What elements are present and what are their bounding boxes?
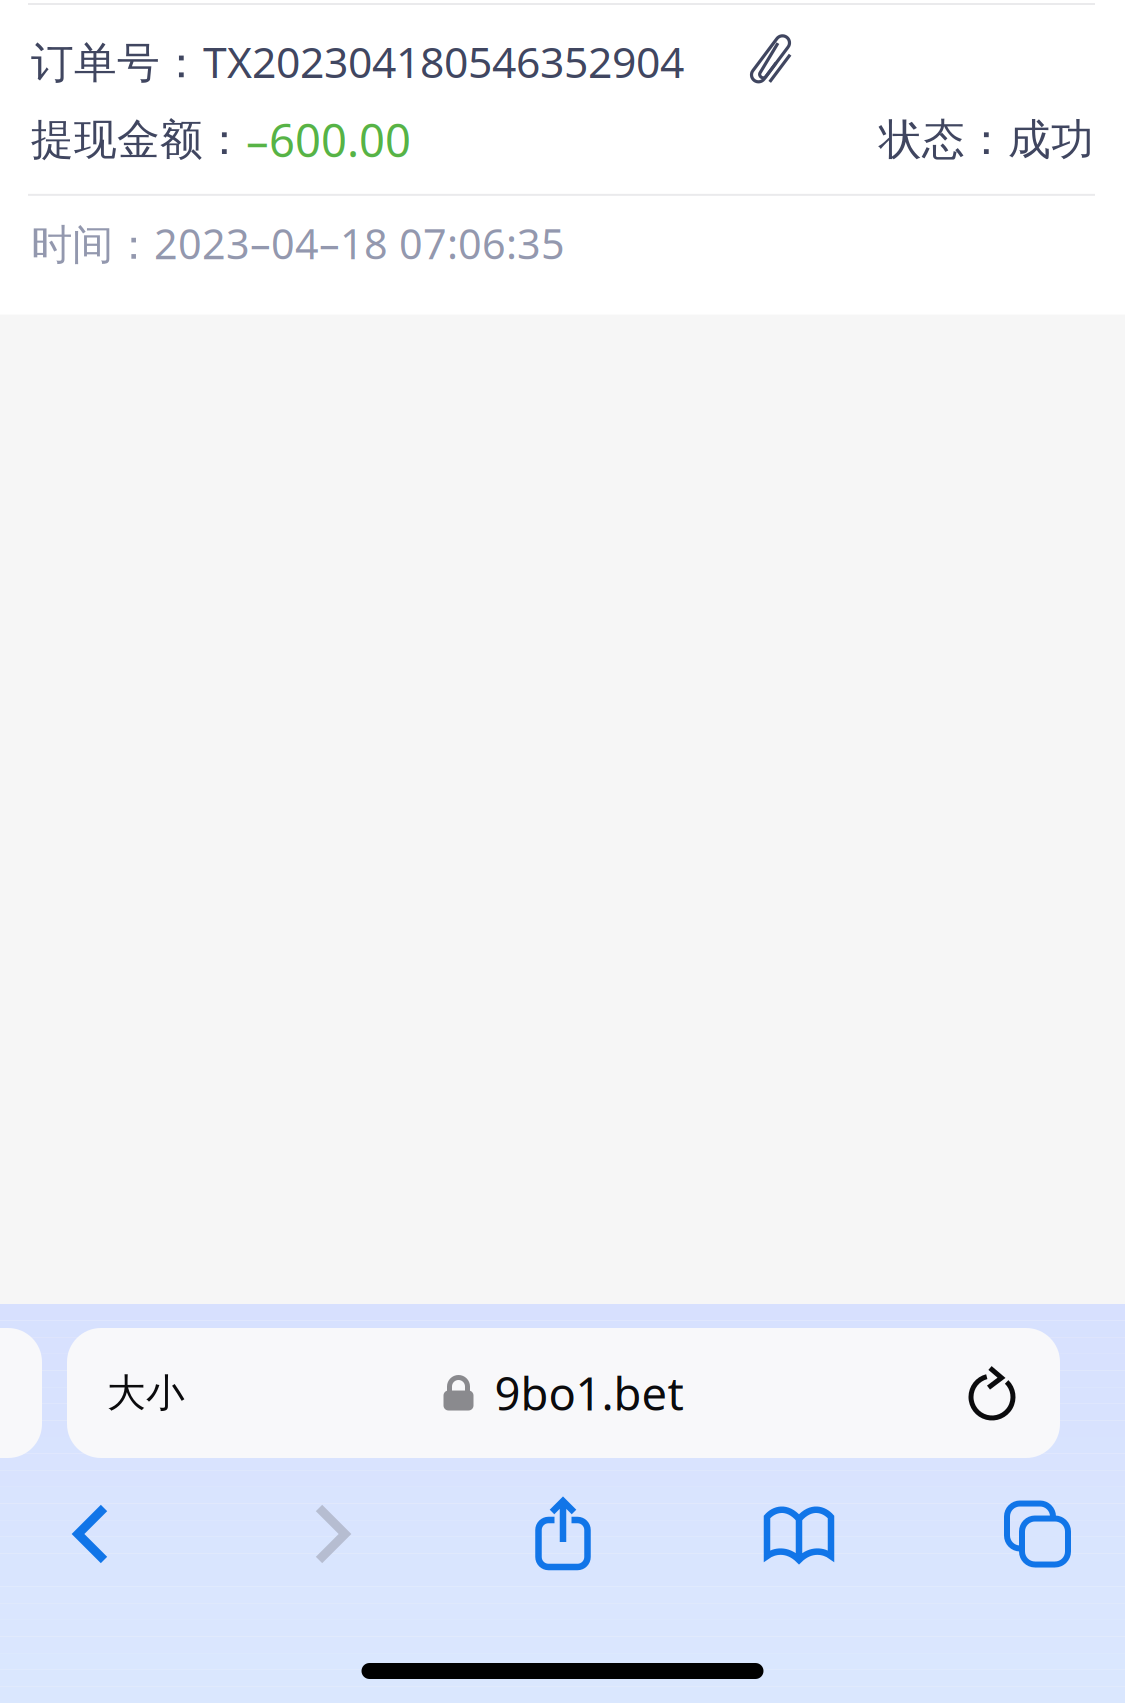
- staticText: –600.00: [246, 110, 411, 170]
- button[interactable]: 复制订单号: [684, 35, 798, 87]
- button[interactable]: Tabs: [1007, 1503, 1068, 1564]
- staticText: 提现金额：: [31, 114, 246, 166]
- staticText: 时间：2023–04–18 07:06:35: [31, 216, 565, 271]
- button[interactable]: Back: [73, 1503, 109, 1565]
- staticText: 9bo1.bet: [494, 1363, 683, 1423]
- staticText: 状态：成功: [879, 114, 1094, 166]
- staticText: 大小: [107, 1369, 185, 1417]
- button[interactable]: Share: [534, 1496, 595, 1572]
- button[interactable]: 9bo1.bet: [67, 1328, 1060, 1458]
- button[interactable]: Forward: [314, 1503, 350, 1565]
- staticText: 订单号：TX202304180546352904: [31, 33, 684, 90]
- button[interactable]: Bookmarks: [762, 1502, 836, 1566]
